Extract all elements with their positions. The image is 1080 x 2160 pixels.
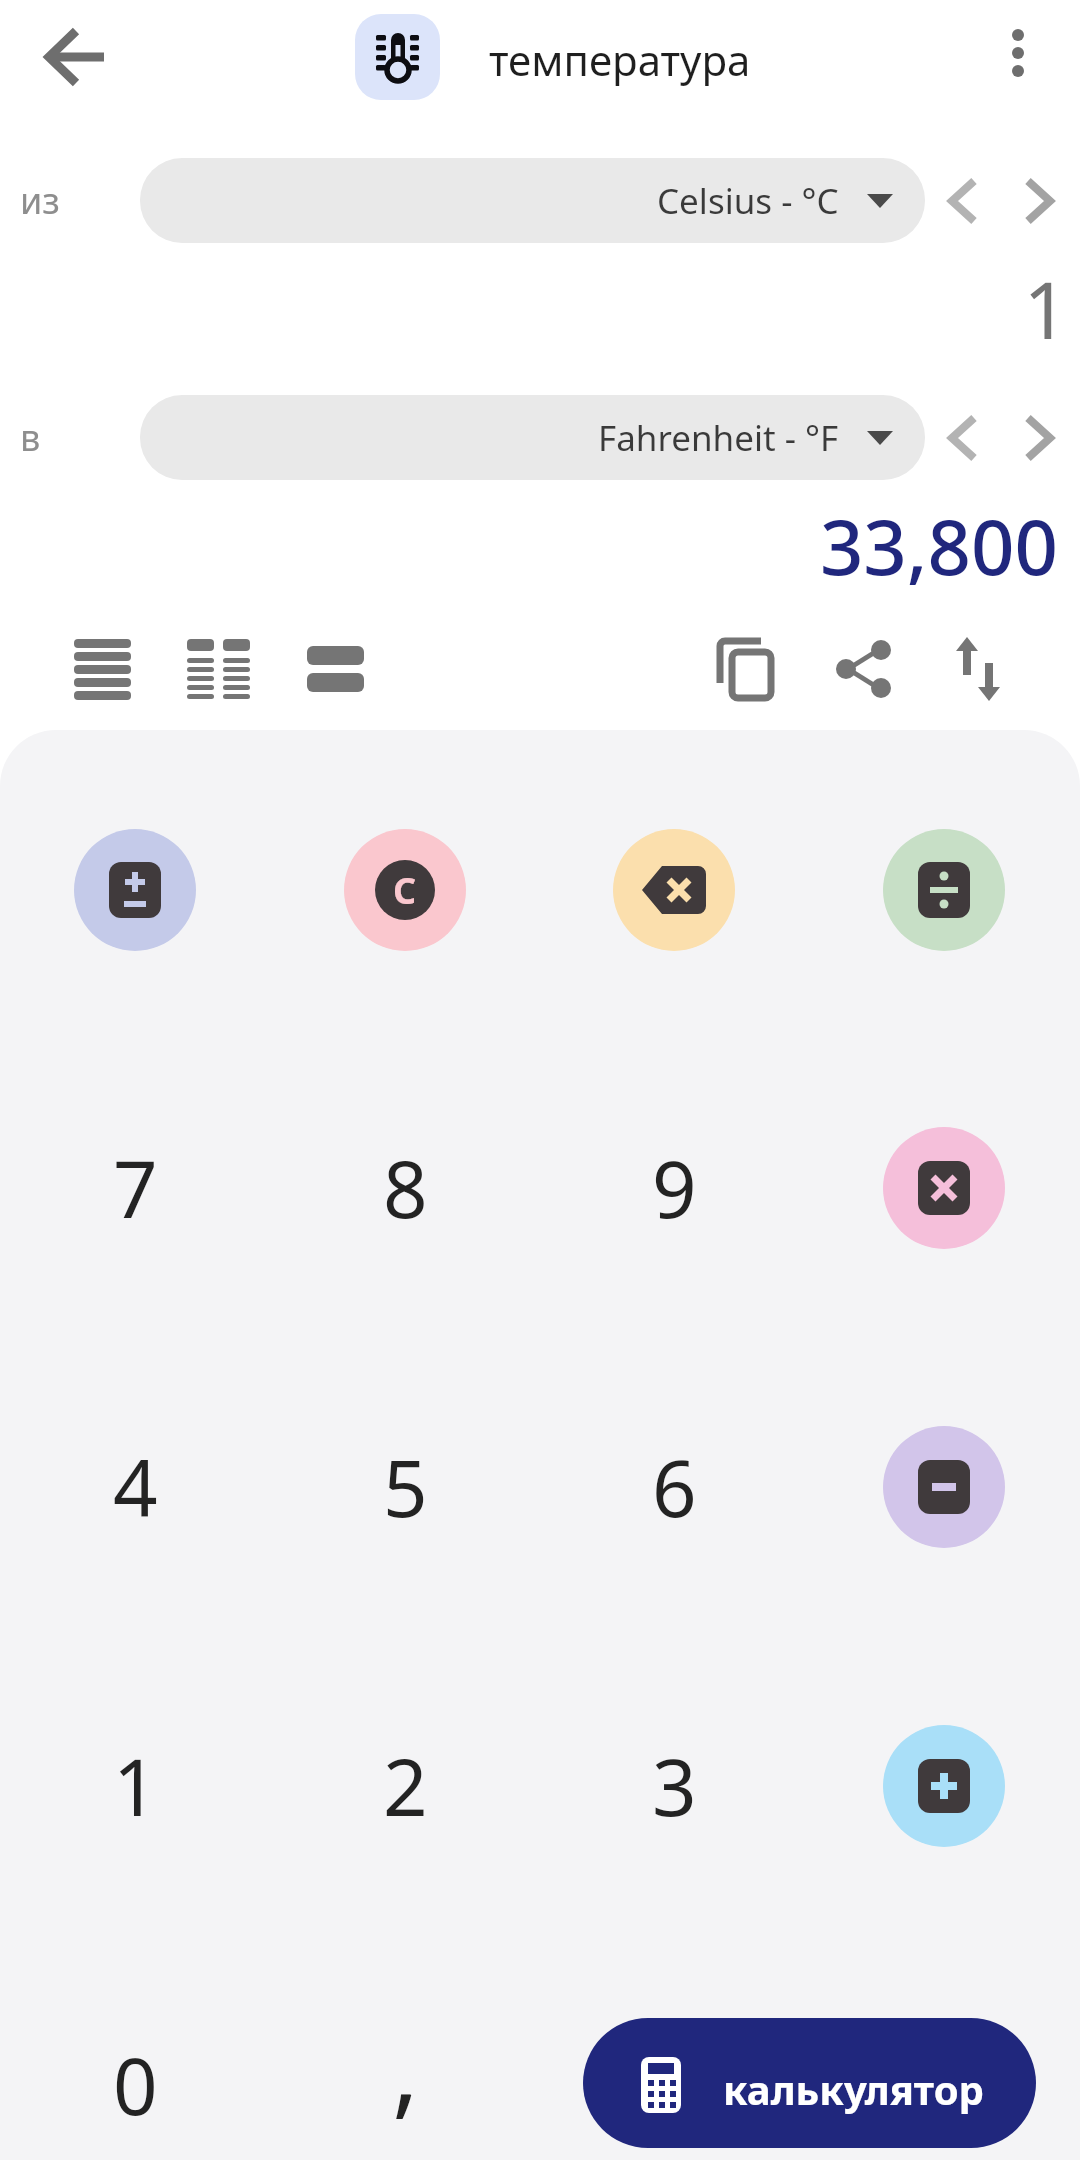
button[interactable]: 3 bbox=[599, 1711, 749, 1861]
staticText: 6 bbox=[652, 1434, 697, 1540]
button[interactable]: C bbox=[344, 829, 466, 951]
button[interactable] bbox=[883, 1725, 1005, 1847]
staticText: 0 bbox=[113, 2032, 158, 2138]
button[interactable] bbox=[1006, 405, 1072, 471]
staticText: в bbox=[20, 413, 130, 462]
button[interactable]: Fahrenheit - °F bbox=[140, 395, 925, 480]
button[interactable] bbox=[883, 1127, 1005, 1249]
staticText: 1 bbox=[113, 1733, 158, 1839]
button[interactable] bbox=[819, 625, 907, 713]
button[interactable] bbox=[58, 625, 146, 713]
button[interactable] bbox=[40, 22, 110, 92]
staticText: калькулятор bbox=[723, 2062, 984, 2116]
button[interactable] bbox=[985, 20, 1051, 86]
button[interactable]: 9 bbox=[599, 1113, 749, 1263]
button[interactable] bbox=[1006, 168, 1072, 234]
staticText: 4 bbox=[113, 1434, 158, 1540]
button[interactable]: 1 bbox=[60, 1711, 210, 1861]
button[interactable] bbox=[701, 625, 789, 713]
button[interactable]: 0 bbox=[60, 2010, 210, 2160]
button[interactable] bbox=[613, 829, 735, 951]
button[interactable]: 2 bbox=[330, 1711, 480, 1861]
button[interactable] bbox=[930, 168, 996, 234]
button[interactable] bbox=[174, 625, 262, 713]
staticText: из bbox=[20, 176, 130, 225]
staticText: 8 bbox=[383, 1135, 428, 1241]
button[interactable] bbox=[883, 829, 1005, 951]
button[interactable]: Celsius - °C bbox=[140, 158, 925, 243]
button[interactable] bbox=[355, 14, 440, 100]
button[interactable]: калькулятор bbox=[583, 2018, 1036, 2148]
button[interactable] bbox=[883, 1426, 1005, 1548]
button[interactable]: 8 bbox=[330, 1113, 480, 1263]
button[interactable] bbox=[934, 625, 1022, 713]
staticText: Fahrenheit - °F bbox=[598, 414, 839, 462]
staticText: температура bbox=[489, 31, 751, 88]
staticText: 3 bbox=[652, 1733, 697, 1839]
staticText: 1 bbox=[0, 256, 1068, 362]
button[interactable] bbox=[291, 625, 379, 713]
staticText: 5 bbox=[383, 1434, 428, 1540]
button[interactable]: 7 bbox=[60, 1113, 210, 1263]
staticText: Celsius - °C bbox=[657, 177, 839, 225]
staticText: 2 bbox=[383, 1733, 428, 1839]
button[interactable]: 4 bbox=[60, 1412, 210, 1562]
button[interactable]: 5 bbox=[330, 1412, 480, 1562]
button[interactable]: 6 bbox=[599, 1412, 749, 1562]
button[interactable] bbox=[930, 405, 996, 471]
staticText: 9 bbox=[652, 1135, 697, 1241]
button[interactable] bbox=[74, 829, 196, 951]
staticText: C bbox=[393, 866, 417, 915]
staticText: 7 bbox=[113, 1135, 158, 1241]
button[interactable]: , bbox=[330, 1992, 480, 2142]
staticText: 33,800 bbox=[0, 494, 1058, 598]
staticText: , bbox=[392, 1999, 419, 2135]
